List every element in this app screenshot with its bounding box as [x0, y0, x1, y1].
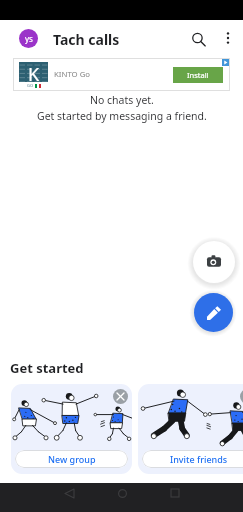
- button[interactable]: More options: [214, 24, 242, 52]
- button[interactable]: Back: [53, 483, 85, 503]
- staticText: No chats yet.: [90, 93, 154, 107]
- button[interactable]: Camera: [193, 241, 235, 283]
- button[interactable]: Invite friends: [142, 450, 243, 468]
- button[interactable]: Home: [106, 483, 138, 503]
- staticText: Invite friends: [170, 453, 228, 465]
- button[interactable]: K: [13, 58, 230, 91]
- button[interactable]: Install: [173, 67, 223, 83]
- staticText: ys: [25, 33, 33, 44]
- staticText: Get started: [10, 359, 84, 377]
- button[interactable]: Dismiss: [113, 389, 128, 404]
- button[interactable]: Search: [183, 24, 213, 54]
- staticText: GO: [27, 83, 34, 88]
- staticText: KINTO Go: [54, 69, 91, 80]
- staticText: New group: [48, 453, 96, 465]
- button[interactable]: Profile: [19, 29, 38, 48]
- staticText: Tach calls: [53, 30, 120, 49]
- button[interactable]: New group: [15, 450, 128, 468]
- button[interactable]: New chat: [194, 293, 233, 332]
- staticText: K: [28, 62, 40, 82]
- staticText: Get started by messaging a friend.: [37, 109, 207, 123]
- button[interactable]: Recent apps: [159, 483, 191, 503]
- staticText: Install: [187, 70, 209, 80]
- button[interactable]: Dismiss: [240, 389, 243, 404]
